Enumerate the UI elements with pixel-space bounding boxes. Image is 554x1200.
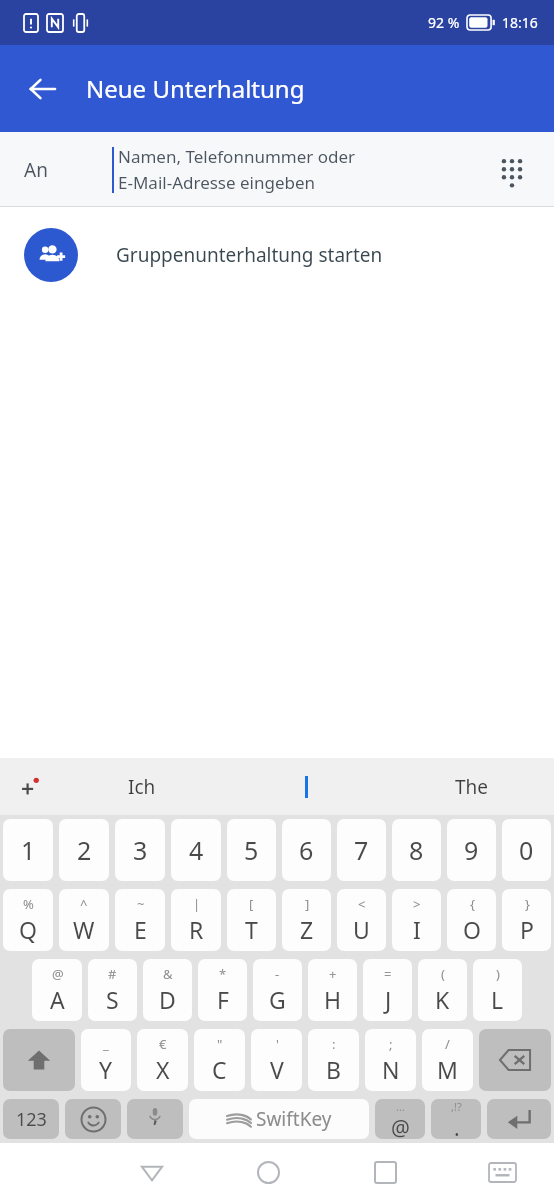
- staticText: 8: [409, 833, 424, 867]
- staticText: S: [106, 984, 119, 1015]
- button[interactable]: Emoji: [65, 1099, 121, 1139]
- staticText: ...: [396, 1099, 405, 1114]
- button[interactable]: %: [3, 889, 53, 951]
- button[interactable]: ;: [365, 1029, 416, 1091]
- button[interactable]: ...: [375, 1099, 425, 1139]
- button[interactable]: Mehr Optionen: [6, 763, 54, 811]
- button[interactable]: 9: [447, 819, 496, 881]
- staticText: M: [437, 1054, 458, 1085]
- button[interactable]: Umschalttaste: [3, 1029, 75, 1091]
- button[interactable]: #: [88, 959, 137, 1021]
- button[interactable]: >: [392, 889, 441, 951]
- staticText: J: [385, 984, 392, 1015]
- staticText: K: [435, 984, 450, 1015]
- button[interactable]: ^: [59, 889, 109, 951]
- staticText: 1: [21, 833, 36, 867]
- staticText: F: [217, 984, 229, 1015]
- button[interactable]: <: [337, 889, 386, 951]
- staticText: P: [520, 914, 534, 945]
- button[interactable]: 4: [171, 819, 221, 881]
- button[interactable]: Zurück: [14, 61, 70, 117]
- staticText: C: [212, 1054, 227, 1085]
- staticText: ]: [305, 895, 310, 913]
- staticText: (: [441, 965, 445, 983]
- button[interactable]: Tastatur ausblenden: [474, 1144, 530, 1200]
- button[interactable]: Löschen: [479, 1029, 551, 1091]
- staticText: Gruppenunterhaltung starten: [116, 242, 383, 268]
- button[interactable]: Startbildschirm: [240, 1144, 296, 1200]
- button[interactable]: 0: [502, 819, 551, 881]
- button[interactable]: 7: [337, 819, 386, 881]
- button[interactable]: Leertaste: [189, 1099, 369, 1139]
- button[interactable]: =: [363, 959, 412, 1021]
- staticText: U: [353, 914, 370, 945]
- button[interactable]: €: [137, 1029, 188, 1091]
- button[interactable]: &: [143, 959, 192, 1021]
- button[interactable]: :: [308, 1029, 359, 1091]
- button[interactable]: ~: [115, 889, 165, 951]
- button[interactable]: +: [308, 959, 357, 1021]
- button[interactable]: ,!?: [431, 1099, 481, 1139]
- button[interactable]: |: [171, 889, 221, 951]
- button[interactable]: ": [194, 1029, 245, 1091]
- staticText: SwiftKey: [256, 1106, 332, 1132]
- button[interactable]: [: [227, 889, 276, 951]
- staticText: 3: [133, 833, 148, 867]
- staticText: T: [245, 914, 258, 945]
- staticText: ": [217, 1035, 223, 1053]
- staticText: <: [358, 895, 366, 913]
- button[interactable]: 1: [3, 819, 53, 881]
- staticText: D: [159, 984, 176, 1015]
- button[interactable]: Eingabetaste: [487, 1099, 551, 1139]
- button[interactable]: (: [418, 959, 467, 1021]
- button[interactable]: 8: [392, 819, 441, 881]
- button[interactable]: {: [447, 889, 496, 951]
- staticText: |: [193, 895, 201, 913]
- button[interactable]: 123: [3, 1099, 59, 1139]
- staticText: 0: [519, 833, 534, 867]
- button[interactable]: Spracheingabe: [127, 1099, 183, 1139]
- staticText: [: [249, 895, 254, 913]
- button[interactable]: }: [502, 889, 551, 951]
- staticText: O: [463, 914, 481, 945]
- button[interactable]: Gruppenunterhaltung starten: [0, 207, 554, 303]
- button[interactable]: Ich: [60, 758, 224, 815]
- button[interactable]: ]: [282, 889, 331, 951]
- button[interactable]: Zurück: [124, 1144, 180, 1200]
- staticText: ': [276, 1035, 279, 1053]
- button[interactable]: /: [422, 1029, 473, 1091]
- button[interactable]: ): [473, 959, 522, 1021]
- staticText: 123: [16, 1107, 47, 1132]
- staticText: 4: [189, 833, 204, 867]
- staticText: }: [525, 895, 530, 913]
- staticText: N: [382, 1054, 400, 1085]
- button[interactable]: 2: [59, 819, 109, 881]
- staticText: ;: [389, 1035, 393, 1053]
- staticText: *: [219, 965, 227, 983]
- button[interactable]: @: [32, 959, 82, 1021]
- staticText: 7: [354, 833, 369, 867]
- staticText: @: [391, 1114, 410, 1139]
- staticText: Y: [99, 1054, 113, 1085]
- button[interactable]: Wähltastatur: [486, 144, 538, 196]
- staticText: ^: [80, 895, 88, 913]
- button[interactable]: The: [389, 758, 554, 815]
- button[interactable]: -: [253, 959, 302, 1021]
- staticText: E-Mail-Adresse eingeben: [118, 171, 316, 194]
- button[interactable]: 5: [227, 819, 276, 881]
- button[interactable]: [224, 758, 389, 815]
- button[interactable]: 6: [282, 819, 331, 881]
- staticText: €: [159, 1035, 167, 1053]
- staticText: Ich: [128, 774, 156, 800]
- staticText: R: [189, 914, 204, 945]
- button[interactable]: Übersicht: [357, 1144, 413, 1200]
- staticText: G: [269, 984, 286, 1015]
- staticText: =: [384, 965, 392, 983]
- button[interactable]: An: [0, 132, 554, 207]
- button[interactable]: *: [198, 959, 247, 1021]
- button[interactable]: _: [81, 1029, 131, 1091]
- button[interactable]: 3: [115, 819, 165, 881]
- staticText: 6: [299, 833, 314, 867]
- button[interactable]: ': [251, 1029, 302, 1091]
- staticText: @: [52, 965, 64, 983]
